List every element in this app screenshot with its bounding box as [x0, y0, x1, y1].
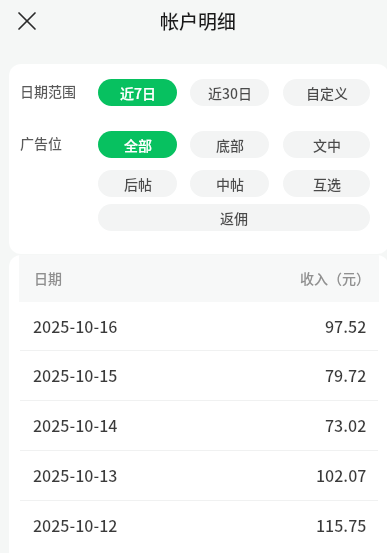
staticText: 79.72 — [325, 363, 367, 386]
button[interactable]: 2025-10-12 — [9, 501, 387, 550]
button[interactable]: 互选 — [283, 170, 370, 197]
button[interactable]: 2025-10-16 — [9, 302, 387, 350]
button[interactable]: 自定义 — [283, 79, 370, 106]
staticText: 2025-10-13 — [33, 463, 118, 486]
staticText: 2025-10-12 — [33, 513, 118, 536]
staticText: 文中 — [313, 135, 341, 155]
staticText: 日期 — [34, 268, 62, 288]
staticText: 广告位 — [20, 133, 62, 153]
staticText: 2025-10-16 — [33, 314, 118, 337]
staticText: 底部 — [216, 135, 244, 155]
staticText: 返佣 — [220, 208, 248, 228]
staticText: 中帖 — [216, 174, 244, 194]
staticText: 近7日 — [120, 83, 156, 103]
staticText: 全部 — [124, 135, 152, 155]
staticText: 2025-10-15 — [33, 363, 118, 386]
button[interactable]: 中帖 — [190, 170, 269, 197]
staticText: 115.75 — [316, 513, 367, 536]
button[interactable]: 2025-10-13 — [9, 451, 387, 500]
button[interactable]: 2025-10-15 — [9, 351, 387, 400]
staticText: 互选 — [313, 174, 341, 194]
staticText: 2025-10-14 — [33, 413, 118, 436]
button[interactable]: 全部 — [98, 131, 177, 158]
button[interactable]: Close — [13, 8, 41, 36]
button[interactable]: 后帖 — [98, 170, 177, 197]
staticText: 收入（元） — [300, 268, 370, 288]
staticText: 97.52 — [325, 314, 367, 337]
button[interactable]: 返佣 — [98, 204, 370, 231]
button[interactable]: 近7日 — [98, 79, 177, 106]
staticText: 帐户明细 — [160, 7, 237, 35]
button[interactable]: 近30日 — [190, 79, 269, 106]
staticText: 后帖 — [124, 174, 152, 194]
staticText: 近30日 — [208, 83, 252, 103]
button[interactable]: 2025-10-14 — [9, 401, 387, 450]
staticText: 日期范围 — [20, 81, 76, 101]
button[interactable]: 文中 — [283, 131, 370, 158]
button[interactable]: 底部 — [190, 131, 269, 158]
staticText: 自定义 — [306, 83, 348, 103]
staticText: 73.02 — [325, 413, 367, 436]
staticText: 102.07 — [316, 463, 367, 486]
